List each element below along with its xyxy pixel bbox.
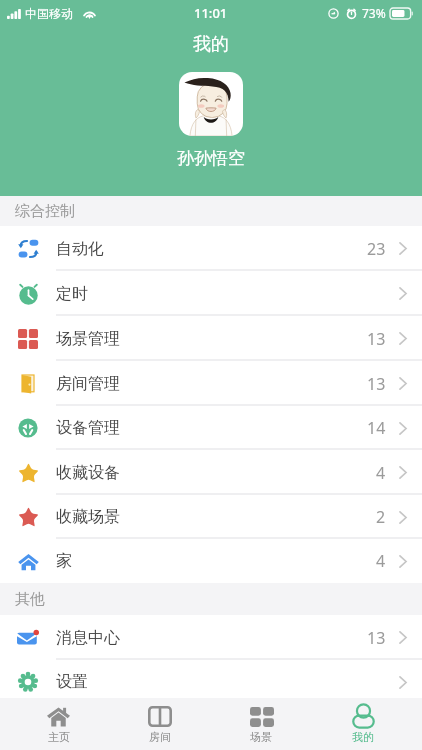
staticText: 收藏场景 — [56, 507, 120, 527]
button[interactable]: 房间管理 — [0, 361, 422, 406]
staticText: 自动化 — [56, 239, 104, 259]
staticText: 13 — [367, 328, 386, 350]
button[interactable]: 自动化 — [0, 226, 422, 271]
staticText: 设置 — [56, 672, 88, 692]
staticText: 73% — [362, 5, 386, 21]
staticText: 11:01 — [194, 4, 228, 22]
button[interactable]: 场景 — [210, 698, 312, 750]
staticText: 其他 — [15, 590, 45, 609]
staticText: 场景管理 — [56, 329, 120, 349]
staticText: 房间 — [149, 730, 171, 744]
staticText: 场景 — [250, 730, 272, 744]
staticText: 我的 — [352, 730, 374, 744]
staticText: 设备管理 — [56, 418, 120, 438]
button[interactable]: 收藏设备 — [0, 450, 422, 495]
staticText: 家 — [56, 551, 72, 571]
button[interactable]: 我的 — [312, 698, 414, 750]
button[interactable]: 收藏场景 — [0, 495, 422, 539]
staticText: 孙孙悟空 — [177, 148, 245, 169]
button[interactable]: 场景管理 — [0, 316, 422, 361]
staticText: 主页 — [48, 730, 70, 744]
staticText: 我的 — [193, 33, 229, 56]
staticText: 13 — [367, 627, 386, 649]
button[interactable]: 设备管理 — [0, 406, 422, 450]
button[interactable]: Profile avatar — [179, 72, 243, 136]
staticText: 2 — [376, 506, 386, 528]
staticText: 综合控制 — [15, 202, 75, 221]
button[interactable]: 消息中心 — [0, 615, 422, 660]
staticText: 4 — [376, 462, 386, 484]
staticText: 中国移动 — [25, 6, 73, 21]
button[interactable]: 定时 — [0, 271, 422, 316]
staticText: 房间管理 — [56, 374, 120, 394]
staticText: 消息中心 — [56, 628, 120, 648]
staticText: 14 — [367, 417, 386, 439]
staticText: 23 — [367, 238, 386, 260]
button[interactable]: 家 — [0, 539, 422, 583]
staticText: 13 — [367, 373, 386, 395]
staticText: 定时 — [56, 284, 88, 304]
button[interactable]: 主页 — [8, 698, 109, 750]
button[interactable]: 房间 — [109, 698, 210, 750]
button[interactable]: 设置 — [0, 660, 422, 704]
staticText: 收藏设备 — [56, 463, 120, 483]
staticText: 4 — [376, 550, 386, 572]
